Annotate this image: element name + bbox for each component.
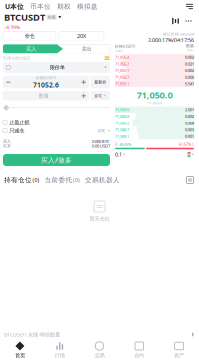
staticText: BTCUSDT <box>4 11 45 23</box>
staticText: 71,054.7 <box>115 74 129 80</box>
staticText: 71,056.4 <box>115 55 129 60</box>
button[interactable]: 限价单 <box>3 62 110 73</box>
button[interactable]: 币本位 <box>27 0 54 13</box>
button[interactable]: 71,056.4 <box>115 54 194 61</box>
staticText: (USDT) <box>115 49 123 52</box>
staticText: 71,048.1 <box>115 133 129 139</box>
staticText: 交易机器人 <box>85 176 120 184</box>
staticText: 71,049.8 <box>115 114 129 119</box>
staticText: 可用 0.00 USDT <box>3 55 30 61</box>
staticText: 可开 <box>3 144 11 148</box>
button[interactable]: 买入/做多 <box>3 154 110 166</box>
staticText: 全仓 <box>24 33 34 39</box>
staticText: 限价单 <box>50 64 65 71</box>
button[interactable]: Menu <box>184 0 195 13</box>
button[interactable]: 交易机器人 <box>85 176 120 184</box>
button[interactable]: 当前委托 <box>44 176 80 184</box>
staticText: 0.004 <box>185 120 194 126</box>
staticText: 71,053.1 <box>115 81 129 86</box>
staticText: 38.43% <box>119 141 131 147</box>
button[interactable]: 0.1 <box>115 151 125 158</box>
staticText: -4.39% <box>4 24 20 31</box>
staticText: 2,000.17%/04:17:56 <box>148 37 194 44</box>
staticText: 买入 <box>26 46 36 52</box>
button[interactable]: 期权 <box>54 0 74 13</box>
button[interactable]: 买入 <box>3 44 63 53</box>
button[interactable]: BTCUSDT 永续 48倍数量 <box>0 329 199 340</box>
staticText: (BTC) <box>187 48 194 52</box>
staticText: 首页 <box>15 352 25 359</box>
button[interactable]: 持有仓位 <box>4 176 39 184</box>
button[interactable]: 71,049.8 <box>115 113 194 120</box>
button[interactable]: 卖出 <box>63 44 110 53</box>
staticText: 71,050.0 <box>115 107 129 112</box>
button[interactable]: U本位 <box>2 0 27 13</box>
staticText: 0.002 <box>185 68 194 73</box>
staticText: 当前委托 <box>44 176 72 184</box>
button[interactable]: 71,054.7 <box>115 74 194 80</box>
staticText: 0.1 <box>115 151 122 158</box>
button[interactable]: 71,053.1 <box>115 80 194 87</box>
staticText: 0.00 USDT <box>92 143 110 149</box>
button[interactable]: 71,049.2 <box>115 120 194 126</box>
staticText: 最新价 <box>94 80 106 85</box>
staticText: 0.000 BTC <box>92 139 110 144</box>
staticText: 买入 <box>3 139 11 144</box>
button[interactable]: Filter <box>185 174 195 186</box>
staticText: 71,048.7 <box>115 127 129 132</box>
staticText: 71052.6 <box>33 80 59 89</box>
staticText: B <box>115 141 118 147</box>
button[interactable]: 全仓 <box>3 31 56 40</box>
button[interactable]: 71,055.1 <box>115 67 194 74</box>
staticText: 0.021 <box>185 61 194 66</box>
staticText: 0.006 <box>185 74 194 80</box>
button[interactable]: Depth display mode <box>187 151 194 158</box>
staticText: 20X <box>77 32 86 40</box>
button[interactable]: 最新价 <box>90 76 110 88</box>
button[interactable]: 交易 <box>80 340 119 360</box>
button[interactable]: 止盈止损 <box>3 120 110 125</box>
button[interactable]: More <box>182 15 195 27</box>
staticText: 71,056.2 <box>115 61 129 66</box>
staticText: 持有仓位 <box>4 176 32 184</box>
staticText: 价格(USDT) <box>36 75 56 80</box>
staticText: 只减仓 <box>9 127 24 134</box>
button[interactable]: 71,056.2 <box>115 61 194 67</box>
button[interactable]: 资产 <box>159 340 199 360</box>
button[interactable]: 71,048.7 <box>115 126 194 133</box>
button[interactable]: 71,050.0 <box>115 106 194 113</box>
button[interactable]: 只减仓 <box>3 128 110 133</box>
button[interactable]: 71,048.1 <box>115 133 194 139</box>
button[interactable]: BTCUSDT <box>4 11 61 31</box>
staticText: 0.002 <box>185 114 194 119</box>
staticText: GTC <box>98 128 106 133</box>
button[interactable]: 20X <box>59 31 104 40</box>
staticText: 交易 <box>94 352 104 359</box>
staticText: 0.003 <box>185 127 194 132</box>
staticText: 期权 <box>57 2 71 11</box>
button[interactable]: 模拟盘 <box>74 0 101 13</box>
staticText: 0.001 <box>185 133 194 139</box>
staticText: 5.541 <box>185 81 194 86</box>
staticText: 模拟盘 <box>77 2 98 11</box>
button[interactable]: 合约 <box>119 340 159 360</box>
staticText: 卖出 <box>81 46 91 52</box>
button[interactable]: 行情 <box>40 340 80 360</box>
staticText: U本位 <box>5 2 24 11</box>
button[interactable]: Chart <box>169 15 182 27</box>
staticText: 合约 <box>134 352 144 359</box>
button[interactable]: BTC <box>90 91 110 101</box>
staticText: 2.001 <box>185 107 194 112</box>
staticText: BTCUSDT 永续 48倍数量 <box>4 331 60 338</box>
staticText: 71,049.2 <box>115 120 129 126</box>
staticText: 71,050.0 <box>136 89 172 101</box>
staticText: S <box>192 141 194 147</box>
staticText: 止盈止损 <box>9 119 29 126</box>
staticText: 数量 <box>186 44 194 48</box>
staticText: 永续 <box>48 15 56 20</box>
staticText: 价格(USDT) <box>115 44 135 49</box>
staticText: 数量 <box>39 93 49 99</box>
staticText: 资产 <box>174 352 184 359</box>
staticText: 买入/做多 <box>41 156 72 164</box>
button[interactable]: 首页 <box>0 340 40 360</box>
